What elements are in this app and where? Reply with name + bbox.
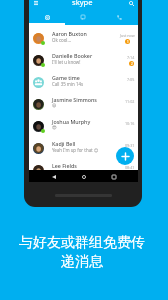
staticText: 10:16 bbox=[125, 121, 135, 126]
staticText: 7:05 bbox=[127, 77, 135, 82]
staticText: 😎 bbox=[52, 125, 57, 130]
staticText: 7:14 bbox=[127, 55, 135, 60]
staticText: Aaron Buxton bbox=[52, 30, 87, 37]
staticText: Joshua Murphy bbox=[52, 118, 91, 125]
button[interactable]: Search bbox=[124, 0, 138, 10]
staticText: Jasmine Simmons bbox=[52, 96, 97, 103]
button[interactable]: Menu bbox=[29, 0, 43, 10]
button[interactable]: New chat bbox=[116, 147, 134, 165]
staticText: I'll let u know! bbox=[52, 59, 81, 65]
staticText: Just now bbox=[120, 33, 135, 38]
staticText: Ok cool... bbox=[52, 37, 71, 43]
button[interactable]: Aaron Buxton bbox=[29, 28, 138, 50]
staticText: Game time bbox=[52, 74, 80, 81]
staticText: 11:02 bbox=[125, 99, 135, 104]
staticText: 09:31 bbox=[125, 143, 135, 148]
staticText: Danielle Booker bbox=[52, 52, 93, 59]
button[interactable]: Recents bbox=[108, 171, 119, 182]
staticText: Yeah I'm up for that 😊 bbox=[52, 147, 99, 153]
button[interactable]: Lee Fields bbox=[29, 160, 138, 182]
staticText: Kadji Bell bbox=[52, 140, 76, 147]
staticText: 1 bbox=[127, 40, 129, 44]
button[interactable]: Chats bbox=[65, 11, 101, 23]
staticText: Thanks! bbox=[52, 169, 68, 175]
button[interactable]: Jasmine Simmons bbox=[29, 94, 138, 116]
button[interactable]: Danielle Booker bbox=[29, 50, 138, 72]
staticText: 与好友或群组免费传 递消息 bbox=[0, 234, 166, 270]
button[interactable]: Calls bbox=[101, 11, 137, 23]
staticText: 😃 bbox=[52, 103, 57, 108]
button[interactable]: Back bbox=[48, 171, 59, 182]
button[interactable]: Kadji Bell bbox=[29, 138, 138, 160]
button[interactable]: Recent bbox=[29, 11, 65, 23]
button[interactable]: Joshua Murphy bbox=[29, 116, 138, 138]
staticText: Call 35 min 14s bbox=[52, 81, 84, 87]
staticText: Lee Fields bbox=[52, 162, 77, 169]
button[interactable]: Home bbox=[78, 171, 89, 182]
staticText: skype bbox=[72, 0, 93, 7]
staticText: 08:41 bbox=[125, 165, 135, 170]
button[interactable]: Game time bbox=[29, 72, 138, 94]
staticText: 2 bbox=[131, 62, 133, 66]
